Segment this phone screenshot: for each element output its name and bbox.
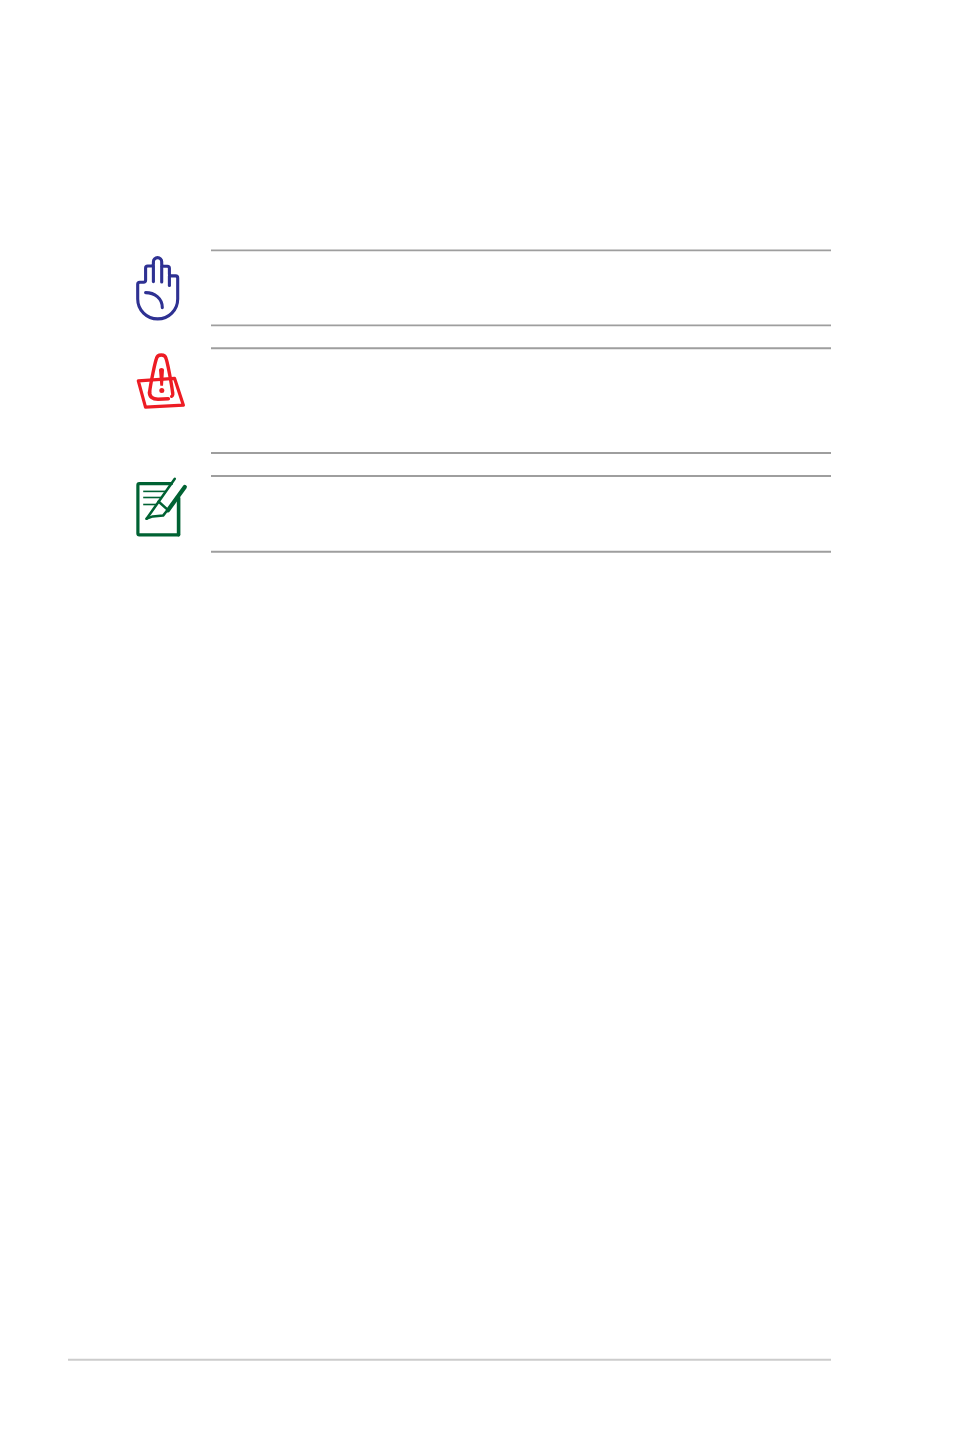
button[interactable]: Note bbox=[132, 474, 832, 554]
button[interactable]: Important note bbox=[132, 248, 832, 328]
button[interactable]: Warning note bbox=[132, 346, 832, 441]
